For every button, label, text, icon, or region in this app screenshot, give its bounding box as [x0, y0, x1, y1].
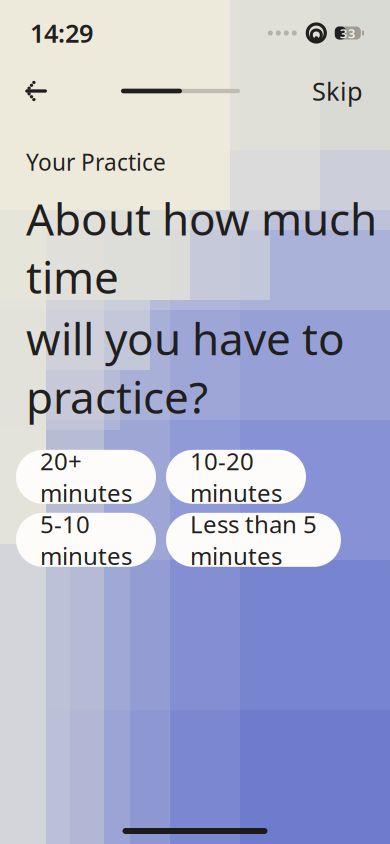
button[interactable]: 10-20 minutes [166, 450, 306, 504]
button[interactable]: 20+ minutes [16, 450, 156, 504]
staticText: 14:29 [30, 16, 93, 50]
staticText: Your Practice [26, 147, 166, 177]
staticText: Less than 5 minutes [190, 508, 317, 572]
button[interactable]: Less than 5 minutes [166, 513, 341, 567]
staticText: will you have to practice? [26, 309, 345, 426]
button[interactable]: Back [13, 68, 59, 114]
staticText: 20+ minutes [40, 445, 132, 509]
staticText: 5-10 minutes [40, 508, 132, 572]
staticText: About how much time [26, 189, 377, 306]
button[interactable]: Skip [302, 66, 373, 116]
staticText: 33 [340, 24, 356, 42]
button[interactable]: 5-10 minutes [16, 513, 156, 567]
staticText: Skip [312, 74, 363, 108]
staticText: 10-20 minutes [190, 445, 282, 509]
